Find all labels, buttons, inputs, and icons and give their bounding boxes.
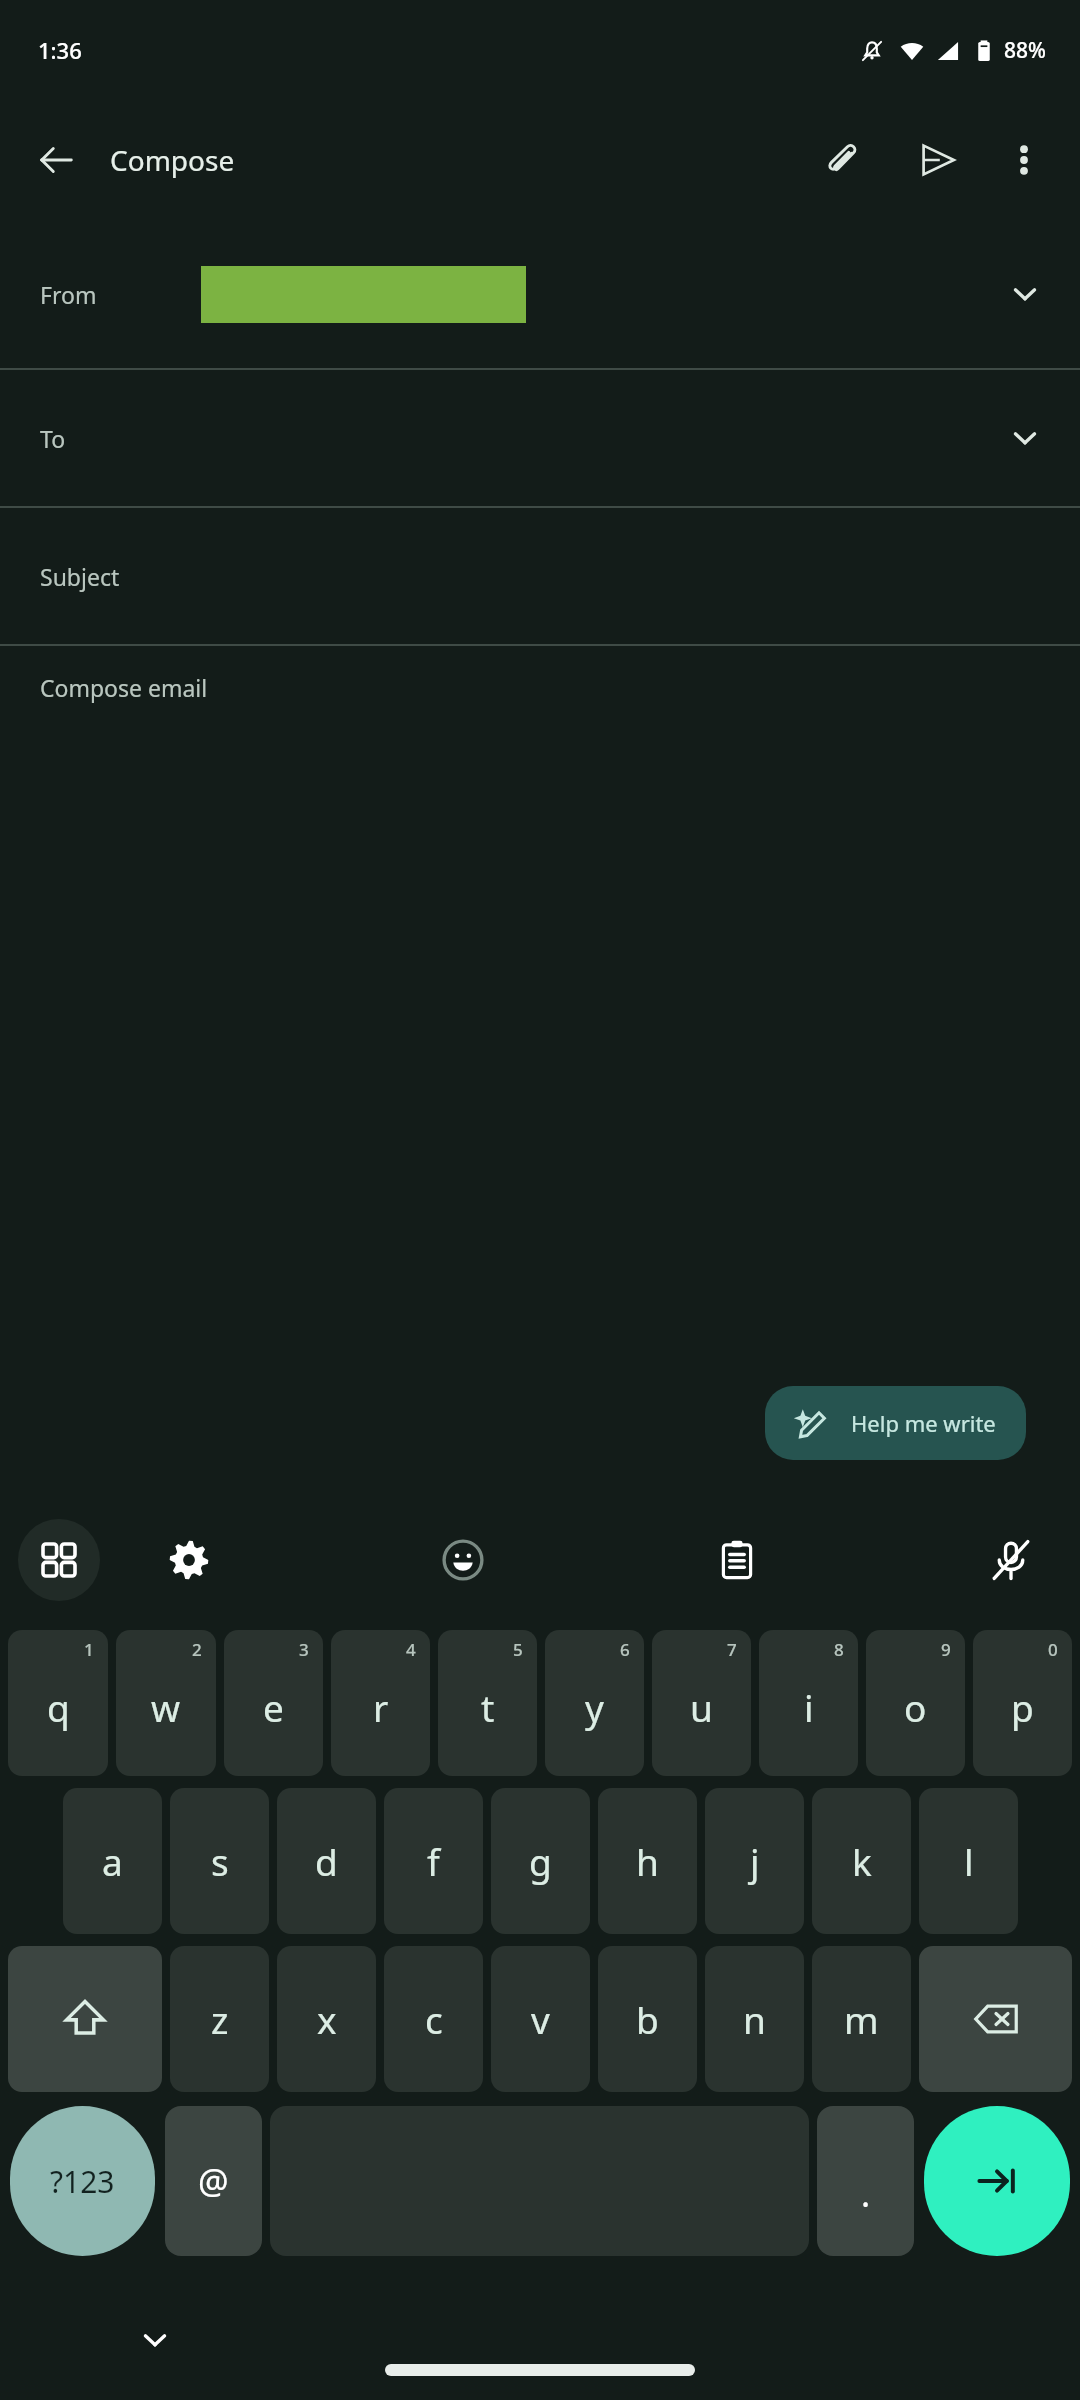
button[interactable]: n (705, 1946, 804, 2092)
button[interactable]: ?123 (10, 2106, 155, 2256)
staticText: i (804, 1682, 814, 1732)
staticText: 1:36 (38, 35, 82, 65)
button[interactable]: Toolbar (18, 1519, 100, 1601)
staticText: ?123 (50, 2161, 115, 2202)
staticText: d (315, 1836, 338, 1886)
button[interactable]: l (919, 1788, 1018, 1934)
staticText: u (690, 1682, 713, 1732)
button[interactable]: 7 (652, 1630, 751, 1776)
staticText: 1 (84, 1638, 94, 1661)
button[interactable]: 9 (866, 1630, 965, 1776)
staticText: To (40, 423, 66, 454)
button[interactable]: Send (900, 122, 976, 198)
button[interactable]: Settings (150, 1521, 228, 1599)
button[interactable]: m (812, 1946, 911, 2092)
button[interactable]: s (170, 1788, 269, 1934)
staticText: e (263, 1682, 284, 1732)
staticText: l (964, 1836, 974, 1886)
staticText: k (852, 1836, 872, 1886)
staticText: a (102, 1836, 123, 1886)
button[interactable]: To (0, 370, 1080, 506)
staticText: x (317, 1994, 337, 2044)
button[interactable]: 8 (759, 1630, 858, 1776)
button[interactable]: a (63, 1788, 162, 1934)
staticText: j (750, 1836, 760, 1886)
staticText: c (425, 1994, 443, 2044)
staticText: 3 (299, 1638, 309, 1661)
button[interactable]: . (817, 2106, 914, 2256)
button[interactable]: d (277, 1788, 376, 1934)
staticText: s (211, 1836, 229, 1886)
button[interactable]: 4 (331, 1630, 430, 1776)
button[interactable]: 0 (973, 1630, 1072, 1776)
button[interactable]: Hide keyboard (120, 2305, 190, 2375)
staticText: Help me write (851, 1408, 996, 1438)
button[interactable]: Attach file (804, 122, 880, 198)
button[interactable]: 6 (545, 1630, 644, 1776)
staticText: r (373, 1682, 389, 1732)
button[interactable]: k (812, 1788, 911, 1934)
button[interactable]: More options (988, 124, 1060, 196)
staticText: h (636, 1836, 659, 1886)
staticText: w (151, 1682, 181, 1732)
button[interactable]: b (598, 1946, 697, 2092)
button[interactable]: From (0, 220, 1080, 368)
button[interactable]: c (384, 1946, 483, 2092)
button[interactable]: 3 (224, 1630, 323, 1776)
button[interactable]: Voice input off (972, 1521, 1050, 1599)
button[interactable]: g (491, 1788, 590, 1934)
button[interactable]: j (705, 1788, 804, 1934)
staticText: t (481, 1682, 495, 1732)
staticText: 6 (620, 1638, 630, 1661)
button[interactable]: 2 (116, 1630, 216, 1776)
staticText: v (531, 1994, 550, 2044)
staticText: Compose (110, 141, 235, 179)
button[interactable]: Clipboard (698, 1521, 776, 1599)
staticText: 5 (513, 1638, 523, 1661)
staticText: 4 (406, 1638, 416, 1661)
button[interactable]: Emoji (424, 1521, 502, 1599)
staticText: 8 (834, 1638, 844, 1661)
button[interactable]: 5 (438, 1630, 537, 1776)
button[interactable]: x (277, 1946, 376, 2092)
staticText: n (743, 1994, 766, 2044)
button[interactable]: v (491, 1946, 590, 2092)
button[interactable]: Subject (0, 508, 1080, 644)
staticText: 88% (1004, 36, 1046, 65)
staticText: z (211, 1994, 229, 2044)
button[interactable]: @ (165, 2106, 262, 2256)
staticText: o (904, 1682, 927, 1732)
staticText: y (585, 1682, 604, 1732)
button[interactable]: 1 (8, 1630, 108, 1776)
staticText: @ (198, 2158, 229, 2204)
staticText: f (427, 1836, 440, 1886)
staticText: 7 (727, 1638, 737, 1661)
staticText: . (861, 2171, 871, 2217)
button[interactable]: Back (20, 124, 92, 196)
staticText: p (1011, 1682, 1034, 1732)
button[interactable]: f (384, 1788, 483, 1934)
button[interactable]: z (170, 1946, 269, 2092)
button[interactable]: Enter (924, 2106, 1070, 2256)
staticText: m (844, 1994, 879, 2044)
button[interactable]: Backspace (919, 1946, 1072, 2092)
staticText: Subject (40, 561, 120, 592)
button[interactable]: Help me write (765, 1386, 1026, 1460)
staticText: Compose email (40, 672, 208, 703)
staticText: 2 (192, 1638, 202, 1661)
staticText: From (40, 279, 97, 310)
staticText: b (636, 1994, 659, 2044)
staticText: g (529, 1836, 552, 1886)
staticText: 9 (941, 1638, 951, 1661)
button[interactable]: Shift (8, 1946, 162, 2092)
button[interactable]: h (598, 1788, 697, 1934)
staticText: 0 (1048, 1638, 1058, 1661)
staticText: q (47, 1682, 70, 1732)
